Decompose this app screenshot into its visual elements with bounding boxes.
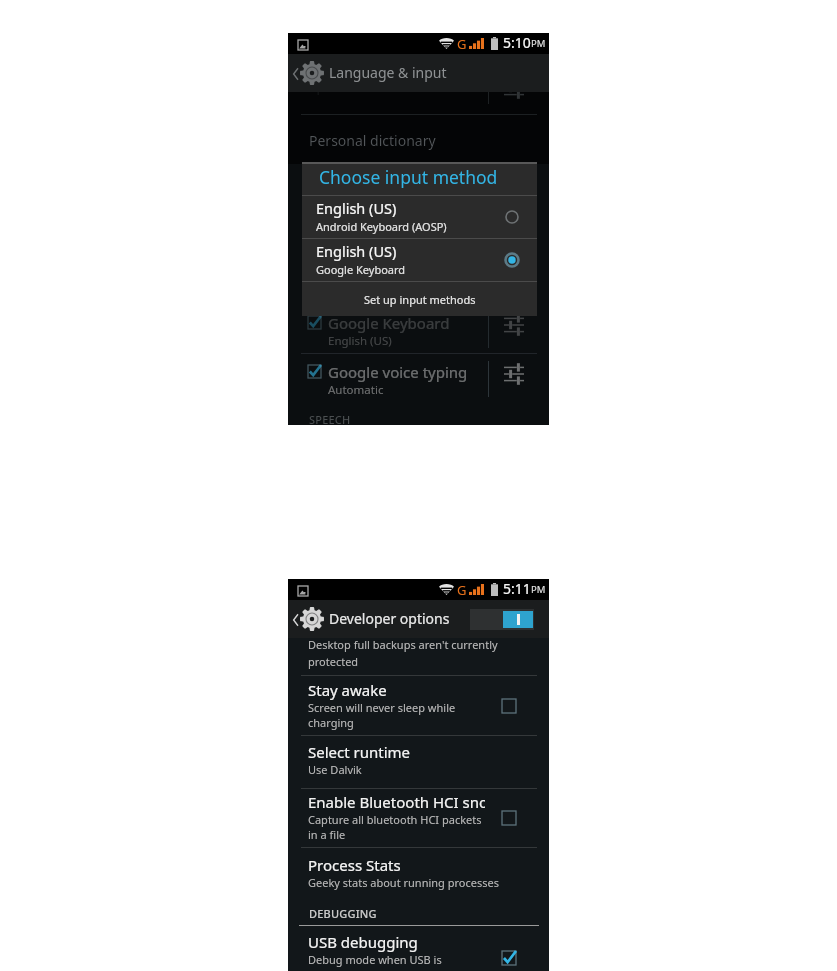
staticText: Select runtime (308, 742, 411, 762)
button[interactable]: Google Keyboard (288, 313, 549, 353)
staticText: Set up input methods (364, 292, 476, 307)
staticText: Geeky stats about running processes (308, 875, 499, 890)
button[interactable]: Stay awake (288, 679, 549, 733)
staticText: Enable Bluetooth HCI snoop (308, 792, 485, 811)
staticText: Screen will never sleep while (308, 700, 456, 715)
staticText: Capture all bluetooth HCI packets (308, 812, 482, 827)
button[interactable]: Process Stats (288, 854, 549, 891)
button[interactable]: Toggle developer options (470, 609, 534, 630)
staticText: Google Keyboard (316, 262, 406, 277)
staticText: Process Stats (308, 855, 401, 875)
button[interactable]: Back (291, 66, 301, 82)
staticText: Use Dalvik (308, 762, 362, 777)
staticText: G (457, 35, 467, 53)
staticText: Android Keyboard (AOSP) (316, 219, 447, 234)
staticText: PM (531, 37, 546, 50)
staticText: 5:10 (503, 33, 531, 52)
staticText: Developer options (329, 609, 450, 628)
staticText: Language & input (329, 63, 447, 82)
staticText: Debug mode when USB is (308, 952, 442, 967)
staticText: protected (308, 654, 359, 669)
staticText: Desktop full backups aren't currently (308, 637, 498, 652)
staticText: Choose input method (319, 165, 498, 189)
button[interactable]: Settings (504, 314, 524, 334)
staticText: English (US) (316, 198, 397, 218)
staticText: Stay awake (308, 680, 387, 700)
staticText: Automatic (328, 382, 384, 398)
button[interactable]: Set up input methods (302, 282, 537, 316)
staticText: Personal dictionary (309, 131, 436, 150)
staticText: Google Keyboard (328, 313, 450, 333)
staticText: SPEECH (309, 412, 351, 425)
button[interactable]: Back (291, 612, 301, 628)
staticText: Spell checker (308, 75, 401, 95)
staticText: USB debugging (308, 932, 418, 952)
staticText: English (US) (328, 333, 392, 349)
button[interactable]: Google voice typing (288, 362, 549, 402)
button[interactable]: Enable Bluetooth HCI snoop (288, 791, 549, 845)
staticText: Google voice typing (328, 362, 468, 382)
staticText: G (457, 581, 467, 599)
staticText: DEBUGGING (309, 906, 377, 921)
staticText: in a file (308, 827, 346, 842)
button[interactable]: English (US) (302, 239, 537, 281)
staticText: 5:11 (503, 579, 531, 598)
staticText: charging (308, 715, 354, 730)
button[interactable]: USB debugging (288, 931, 549, 971)
button[interactable]: Select runtime (288, 741, 549, 778)
button[interactable]: Settings (504, 363, 524, 383)
staticText: English (US) (316, 241, 397, 261)
staticText: PM (531, 583, 546, 596)
staticText: Local backup password (308, 618, 472, 638)
button[interactable]: English (US) (302, 196, 537, 238)
